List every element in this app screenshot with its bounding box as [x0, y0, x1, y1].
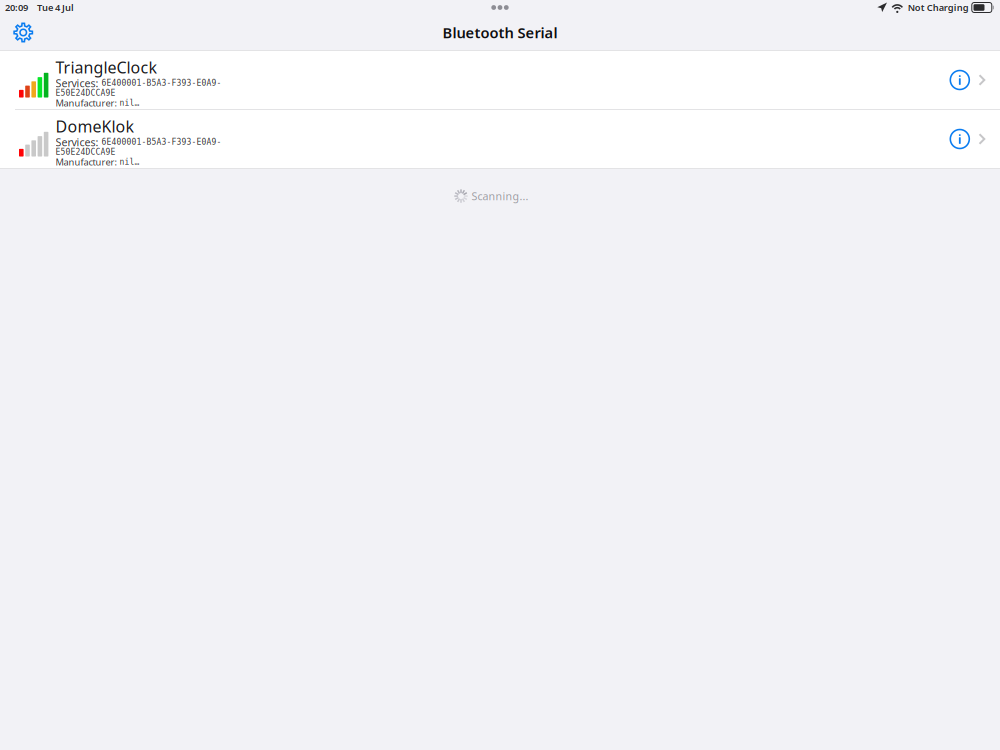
- button[interactable]: TriangleClock: [0, 51, 1000, 109]
- staticText: E50E24DCCA9E: [55, 88, 115, 98]
- staticText: Scanning...: [471, 189, 528, 203]
- staticText: TriangleClock: [55, 57, 157, 78]
- button[interactable]: Settings: [0, 16, 46, 49]
- staticText: Tue 4 Jul: [37, 1, 74, 14]
- button[interactable]: DomeKlok: [0, 110, 1000, 168]
- staticText: Bluetooth Serial: [442, 23, 557, 42]
- staticText: nil…: [119, 98, 139, 108]
- staticText: 6E400001-B5A3-F393-E0A9-: [101, 137, 221, 147]
- staticText: Not Charging: [908, 1, 969, 14]
- staticText: Services:: [55, 135, 101, 149]
- staticText: 20:09: [5, 1, 28, 14]
- staticText: Manufacturer:: [55, 156, 119, 168]
- staticText: Services:: [55, 76, 101, 90]
- staticText: nil…: [119, 157, 139, 167]
- staticText: Manufacturer:: [55, 97, 119, 109]
- staticText: Scanning...: [489, 189, 546, 203]
- staticText: E50E24DCCA9E: [55, 147, 115, 157]
- staticText: DomeKlok: [55, 116, 134, 137]
- staticText: 6E400001-B5A3-F393-E0A9-: [101, 78, 221, 88]
